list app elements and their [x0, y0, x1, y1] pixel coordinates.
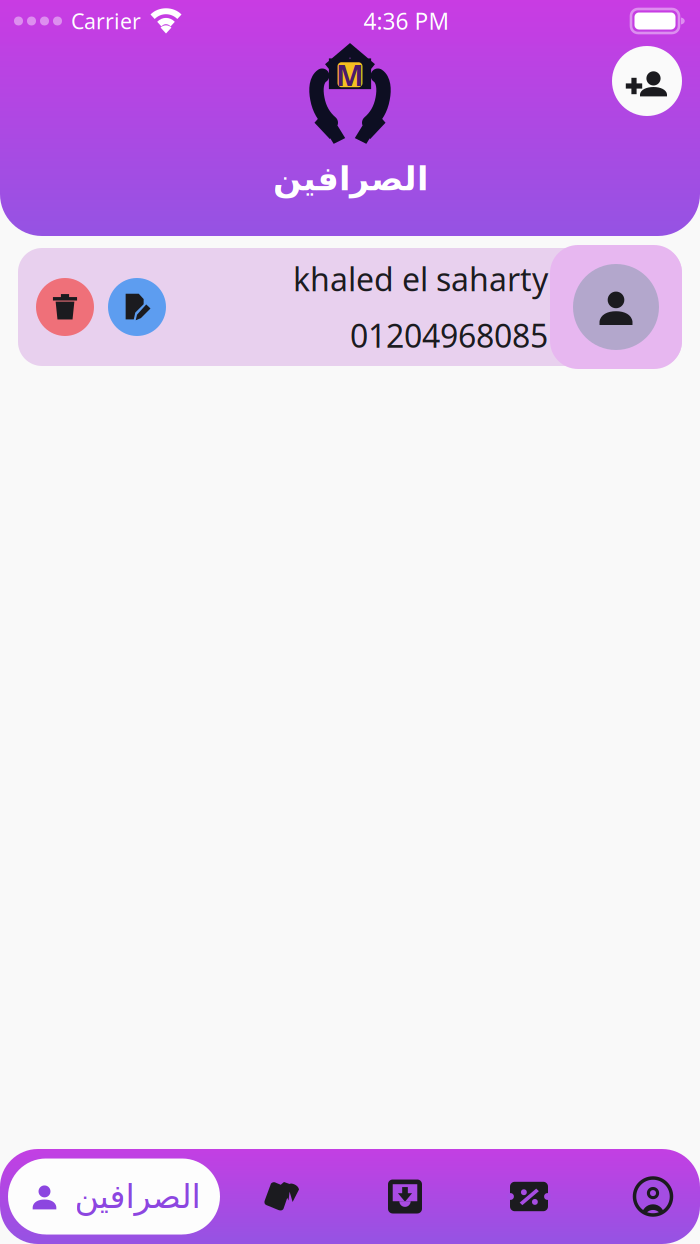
button[interactable]: الصرافين — [8, 1158, 220, 1234]
staticText: khaled el saharty — [293, 257, 548, 300]
button[interactable]: Cards — [250, 1162, 312, 1230]
button[interactable]: Profile — [622, 1162, 684, 1230]
staticText: الصرافين — [74, 1178, 200, 1215]
staticText: M — [336, 55, 364, 94]
staticText: 4:36 PM — [363, 6, 449, 36]
staticText: الصرافين — [272, 160, 427, 198]
button[interactable]: Add exchanger — [612, 46, 682, 116]
staticText: Carrier — [71, 7, 141, 35]
button[interactable]: Receive — [374, 1162, 436, 1230]
button[interactable]: Offers — [498, 1162, 560, 1230]
button[interactable]: Delete — [36, 278, 94, 336]
staticText: 01204968085 — [350, 314, 548, 356]
button[interactable]: Edit — [108, 278, 166, 336]
